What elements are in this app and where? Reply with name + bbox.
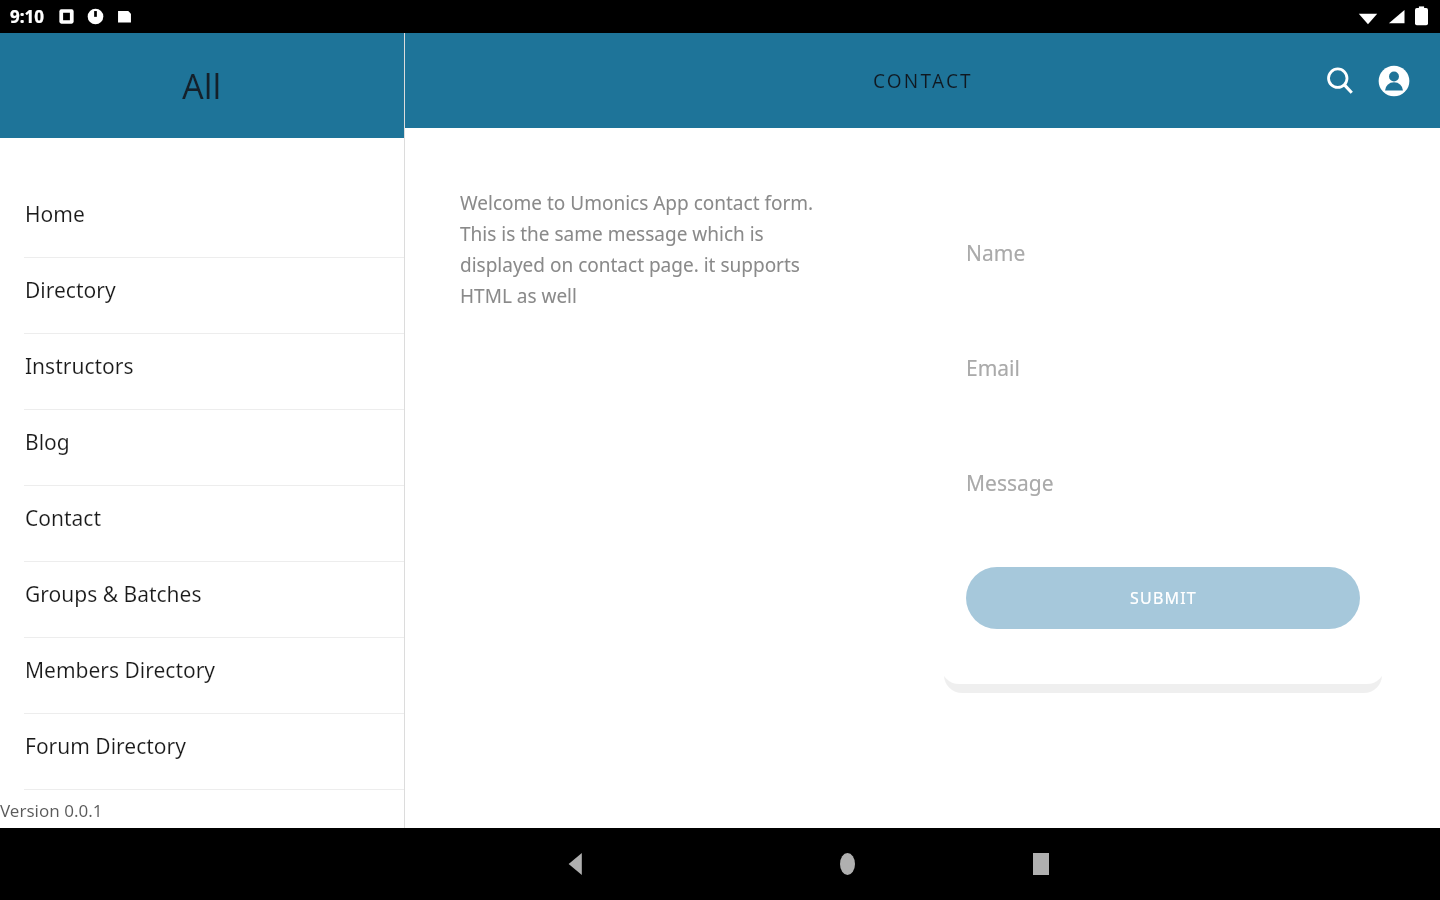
button[interactable]: Account [1368,55,1420,107]
button[interactable]: Back [404,828,750,900]
staticText: Message [966,469,1054,498]
staticText: CONTACT [873,68,973,94]
button[interactable]: Directory [0,258,404,334]
button[interactable]: Forum Directory [0,714,404,790]
staticText: All [182,63,222,109]
staticText: displayed on contact page. it supports [460,252,800,278]
staticText: Members Directory [25,656,216,685]
button[interactable]: Home [750,828,944,900]
button[interactable]: Search [1314,55,1366,107]
staticText: Welcome to Umonics App contact form. [460,190,814,216]
button[interactable]: Contact [0,486,404,562]
button[interactable]: Members Directory [0,638,404,714]
button[interactable]: Groups & Batches [0,562,404,638]
button[interactable]: Recent apps [944,828,1138,900]
button[interactable]: All [0,33,404,138]
button[interactable]: Blog [0,410,404,486]
staticText: Home [25,200,85,229]
button[interactable]: Home [0,182,404,258]
staticText: HTML as well [460,283,577,309]
staticText: Instructors [25,352,134,381]
staticText: Forum Directory [25,732,186,761]
button[interactable]: Name [966,234,1360,272]
staticText: 9:10 [10,5,44,28]
staticText: Email [966,354,1020,383]
staticText: This is the same message which is [460,221,764,247]
staticText: Name [966,239,1026,268]
staticText: Directory [25,276,116,305]
staticText: Version 0.0.1 [0,799,103,822]
staticText: Groups & Batches [25,580,202,609]
button[interactable]: SUBMIT [966,567,1360,629]
button[interactable]: Instructors [0,334,404,410]
staticText: Blog [25,428,70,457]
staticText: Contact [25,504,101,533]
button[interactable]: Message [966,464,1360,502]
button[interactable]: Email [966,349,1360,387]
staticText: SUBMIT [1130,587,1197,609]
